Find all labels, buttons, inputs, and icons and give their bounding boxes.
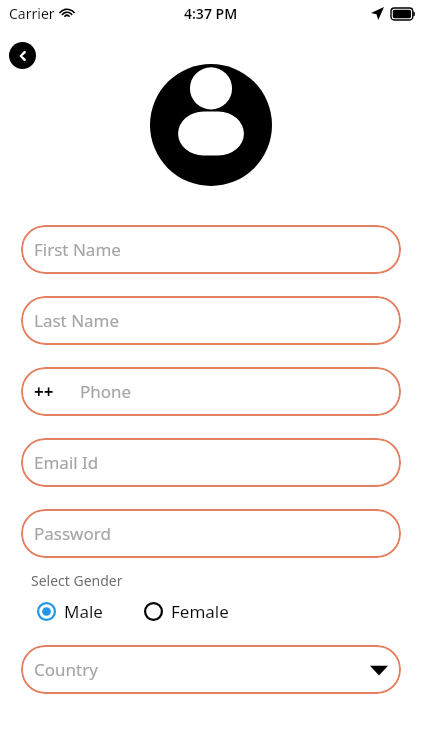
staticText: Female (171, 600, 229, 623)
staticText: ++ (34, 380, 54, 403)
button[interactable]: Female (142, 596, 231, 627)
button[interactable]: Last Name (21, 296, 401, 345)
staticText: Phone (80, 380, 132, 403)
staticText: Last Name (34, 309, 120, 332)
other: Open country list (370, 664, 388, 676)
staticText: 4:37 PM (184, 4, 238, 23)
button[interactable]: Male (35, 596, 105, 627)
button[interactable]: First Name (21, 225, 401, 274)
staticText: Password (34, 522, 111, 545)
staticText: Male (64, 600, 103, 623)
staticText: Email Id (34, 451, 99, 474)
button[interactable]: Password (21, 509, 401, 558)
button[interactable]: Email Id (21, 438, 401, 487)
button[interactable]: Country (21, 645, 401, 694)
staticText: First Name (34, 238, 121, 261)
staticText: Select Gender (31, 571, 123, 590)
button[interactable]: Back (9, 42, 36, 69)
button[interactable]: ++ (21, 367, 401, 416)
staticText: Carrier (9, 4, 55, 23)
staticText: Country (34, 658, 98, 681)
